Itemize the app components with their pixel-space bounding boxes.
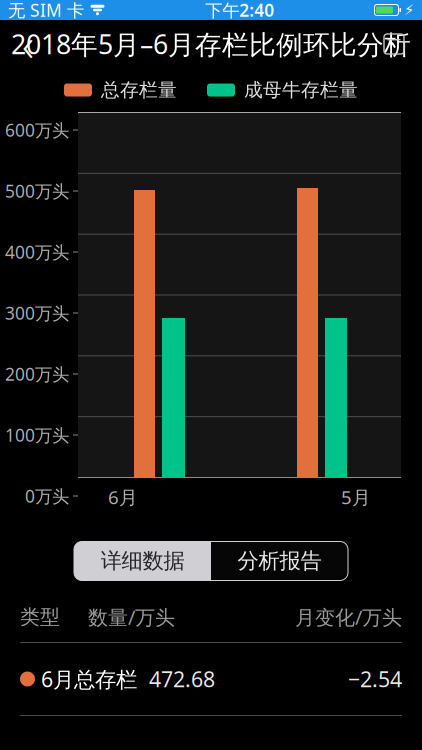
staticText: 6月总存栏 [41,665,137,693]
staticText: −2.54 [348,665,402,693]
button[interactable]: 分析报告 [211,541,348,580]
staticText: 300万头 [5,301,69,324]
staticText: 2018年5月–6月存栏比例环比分析 [11,26,411,62]
staticText: 472.68 [149,665,215,693]
staticText: 分析报告 [237,548,321,574]
staticText: 5月 [341,485,371,509]
button[interactable]: 返回 [6,22,50,66]
staticText: 类型 [20,605,60,629]
staticText: 500万头 [5,179,69,202]
staticText: 详细数据 [100,548,184,574]
button[interactable]: 6月总存栏 [0,643,422,715]
button[interactable]: 切换视图 [372,22,416,66]
staticText: 数量/万头 [88,604,175,630]
staticText: 月变化/万头 [295,604,402,630]
staticText: ‹ [22,14,34,74]
button[interactable]: 详细数据 [74,541,211,580]
staticText: 600万头 [5,118,69,141]
staticText: 总存栏量 [101,78,177,101]
staticText: 100万头 [5,423,69,446]
staticText: 6月 [108,485,138,509]
staticText: ⚡︎ [404,2,414,18]
staticText: 无 SIM 卡 [8,0,84,21]
staticText: 0万头 [25,484,69,507]
staticText: 成母牛存栏量 [244,78,358,101]
staticText: 下午2:40 [205,0,274,21]
staticText: 400万头 [5,240,69,263]
staticText: 200万头 [5,362,69,385]
